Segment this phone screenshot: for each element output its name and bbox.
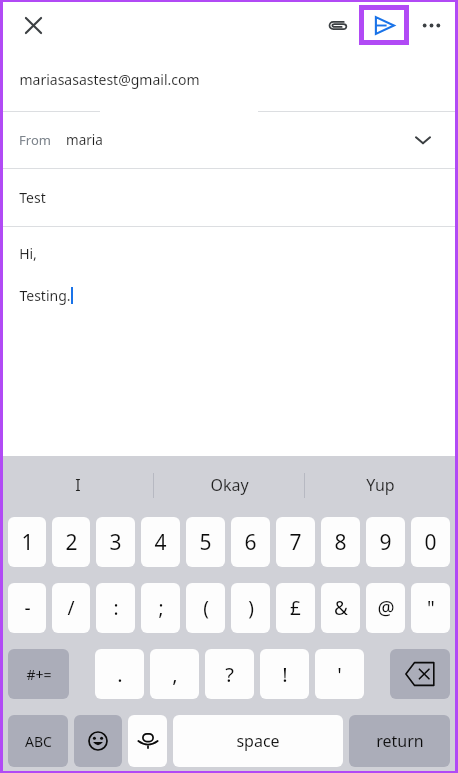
button[interactable]: 8	[321, 517, 360, 567]
staticText: @	[377, 595, 395, 621]
button[interactable]: @	[366, 583, 405, 633]
staticText: )	[248, 595, 254, 621]
staticText: 5	[199, 528, 212, 557]
staticText: 0	[424, 528, 437, 557]
button[interactable]: 4	[141, 517, 180, 567]
staticText: I	[75, 474, 81, 496]
button[interactable]: ;	[141, 583, 180, 633]
staticText: Testing.	[19, 286, 71, 305]
button[interactable]: 3	[96, 517, 135, 567]
staticText: Test	[19, 188, 46, 207]
staticText: !	[282, 661, 288, 688]
button[interactable]: "	[411, 583, 450, 633]
staticText: 1	[21, 528, 34, 557]
staticText: 2	[65, 528, 78, 557]
button[interactable]: &	[321, 583, 360, 633]
button[interactable]: ,	[150, 649, 199, 699]
button[interactable]: mariasasastest@gmail.com	[3, 47, 455, 111]
button[interactable]: 0	[411, 517, 450, 567]
button[interactable]: Backspace	[390, 649, 450, 699]
button[interactable]: 5	[186, 517, 225, 567]
button[interactable]: #+=	[8, 649, 69, 699]
staticText: Hi,	[19, 244, 37, 263]
button[interactable]: Yup	[305, 456, 455, 514]
button[interactable]: Send	[364, 10, 404, 40]
button[interactable]: .	[95, 649, 144, 699]
staticText: 9	[379, 528, 392, 557]
staticText: 7	[289, 528, 302, 557]
button[interactable]: (	[186, 583, 225, 633]
staticText: :	[113, 595, 119, 621]
staticText: Yup	[366, 474, 395, 496]
button[interactable]: 9	[366, 517, 405, 567]
staticText: ABC	[25, 732, 52, 751]
staticText: maria	[66, 131, 103, 149]
button[interactable]: 7	[276, 517, 315, 567]
button[interactable]: More options	[409, 3, 453, 47]
button[interactable]: £	[276, 583, 315, 633]
button[interactable]: Hi,	[3, 227, 455, 456]
button[interactable]: ABC	[8, 715, 68, 767]
staticText: .	[117, 661, 123, 688]
staticText: ,	[172, 661, 178, 688]
staticText: -	[24, 595, 31, 621]
staticText: ?	[225, 661, 234, 688]
staticText: ;	[158, 595, 164, 621]
staticText: Okay	[210, 474, 249, 496]
button[interactable]: Okay	[154, 456, 304, 514]
button[interactable]: return	[349, 715, 450, 767]
staticText: 8	[334, 528, 347, 557]
button[interactable]: :	[96, 583, 135, 633]
button[interactable]: )	[231, 583, 270, 633]
button[interactable]: Test	[3, 169, 455, 226]
staticText: '	[337, 661, 342, 688]
button[interactable]: Emoji	[74, 715, 122, 767]
button[interactable]: /	[52, 583, 90, 633]
staticText: 3	[109, 528, 122, 557]
button[interactable]: From	[3, 112, 455, 168]
staticText: &	[334, 595, 348, 621]
staticText: #+=	[26, 665, 52, 684]
button[interactable]: '	[315, 649, 364, 699]
button[interactable]: space	[173, 715, 343, 767]
staticText: 6	[244, 528, 257, 557]
staticText: From	[19, 131, 51, 149]
staticText: £	[290, 595, 301, 621]
button[interactable]: Close	[13, 5, 53, 45]
staticText: 4	[154, 528, 167, 557]
button[interactable]: !	[260, 649, 309, 699]
button[interactable]: -	[8, 583, 46, 633]
staticText: return	[376, 730, 424, 752]
button[interactable]: Attach file	[315, 3, 359, 47]
button[interactable]: 2	[52, 517, 90, 567]
staticText: /	[67, 595, 75, 621]
button[interactable]: Voice input	[128, 715, 167, 767]
staticText: space	[236, 730, 280, 752]
button[interactable]: ?	[205, 649, 254, 699]
staticText: "	[427, 595, 435, 621]
button[interactable]: 1	[8, 517, 46, 567]
button[interactable]: 6	[231, 517, 270, 567]
staticText: mariasasastest@gmail.com	[19, 70, 200, 89]
button[interactable]: I	[3, 456, 153, 514]
staticText: (	[203, 595, 209, 621]
